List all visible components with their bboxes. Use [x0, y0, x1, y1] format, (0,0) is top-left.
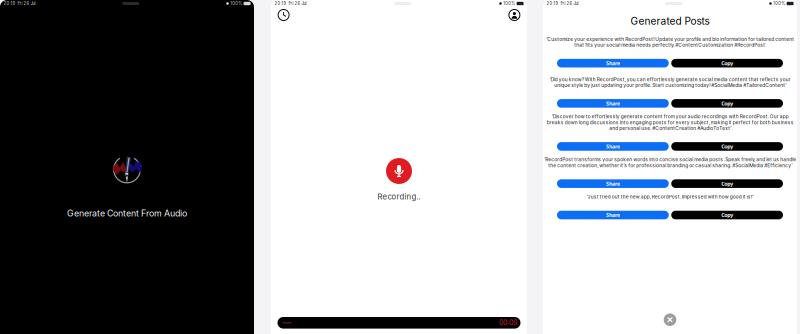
staticText: Share	[606, 211, 620, 219]
staticText: 'Discover how to effortlessly generate c…	[546, 114, 793, 131]
button[interactable]: Copy	[671, 59, 783, 67]
button[interactable]: Copy	[671, 99, 783, 108]
staticText: 00:09	[499, 319, 517, 327]
button[interactable]: Share	[557, 59, 669, 67]
button[interactable]: Share	[557, 142, 669, 151]
staticText: Copy	[721, 143, 733, 150]
button[interactable]: Copy	[671, 142, 783, 151]
staticText: Share	[606, 143, 620, 150]
button[interactable]: Share	[557, 211, 669, 219]
staticText: Share	[606, 100, 620, 107]
staticText: 20:19 Fri 26 Jul	[3, 1, 35, 6]
staticText: 100%	[503, 1, 515, 6]
staticText: 'Customize your experience with RecordPo…	[546, 36, 794, 48]
staticText: Share	[606, 60, 620, 67]
button[interactable]: Share	[557, 99, 669, 108]
staticText: 100%	[230, 1, 242, 6]
staticText: 100%	[773, 1, 785, 6]
staticText: 20:19 Fri 26 Jul	[274, 1, 306, 6]
staticText: Copy	[721, 60, 733, 67]
button[interactable]: Copy	[671, 211, 783, 219]
staticText: Generated Posts	[630, 15, 709, 27]
staticText: "Just tried out the new app, RecordPost.…	[586, 194, 753, 200]
button[interactable]: Stop recording	[386, 158, 412, 184]
button[interactable]: Profile	[505, 6, 523, 24]
staticText: 'Did you know? With RecordPost, you can …	[549, 76, 790, 88]
button[interactable]: Share	[557, 179, 669, 188]
button[interactable]: Close	[661, 310, 679, 329]
button[interactable]: Copy	[671, 179, 783, 188]
staticText: 'RecordPost transforms your spoken words…	[544, 157, 796, 168]
staticText: 20:19 Fri 26 Jul	[546, 1, 578, 6]
staticText: Copy	[721, 180, 733, 187]
staticText: Copy	[721, 211, 733, 219]
staticText: Share	[606, 180, 620, 187]
staticText: Recording..	[377, 192, 420, 201]
staticText: Copy	[721, 100, 733, 107]
staticText: Generate Content From Audio	[67, 208, 187, 219]
button[interactable]: Recording history	[275, 6, 293, 24]
